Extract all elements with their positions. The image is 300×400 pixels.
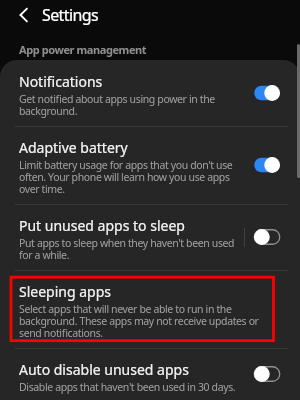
button[interactable]: Sleeping apps [0, 270, 300, 348]
staticText: Notifications [19, 72, 103, 91]
button[interactable]: Back [0, 0, 40, 30]
staticText: Put unused apps to sleep [19, 216, 185, 235]
staticText: Sleeping apps [19, 282, 111, 301]
button[interactable]: Auto disable unused apps [0, 348, 300, 400]
staticText: Limit battery usage for apps that you do… [19, 158, 281, 196]
staticText: Adaptive battery [19, 138, 128, 157]
button[interactable]: Adaptive battery [0, 126, 300, 204]
staticText: Put apps to sleep when they haven't been… [19, 236, 281, 262]
staticText: Disable apps that haven't been used in 3… [19, 380, 281, 394]
staticText: App power management [19, 42, 147, 57]
button[interactable]: Notifications [0, 60, 300, 126]
staticText: Settings [42, 4, 99, 26]
staticText: Get notified about apps using power in t… [19, 92, 281, 118]
button[interactable]: Put unused apps to sleep [0, 204, 300, 270]
staticText: Select apps that will never be able to r… [19, 302, 281, 340]
staticText: Auto disable unused apps [19, 360, 189, 379]
